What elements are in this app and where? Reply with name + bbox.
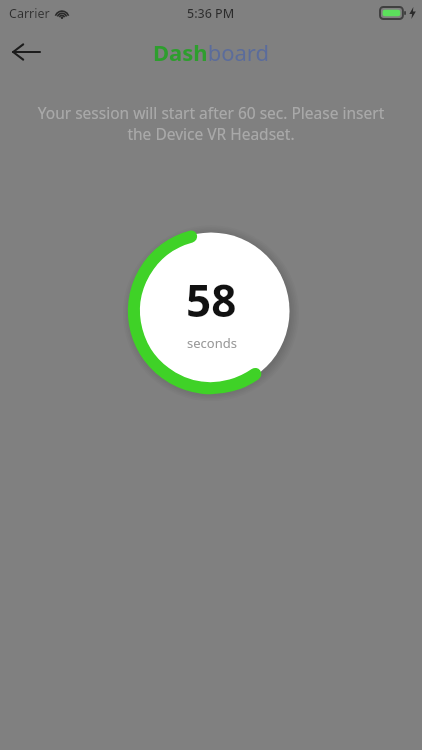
staticText: Carrier (9, 5, 50, 22)
staticText: 58 (186, 270, 237, 330)
staticText: Dashboard (153, 37, 269, 67)
button[interactable]: Back (0, 26, 52, 78)
staticText: seconds (187, 334, 237, 352)
staticText: 5:36 PM (187, 5, 235, 22)
staticText: Your session will start after 60 sec. Pl… (36, 102, 386, 145)
